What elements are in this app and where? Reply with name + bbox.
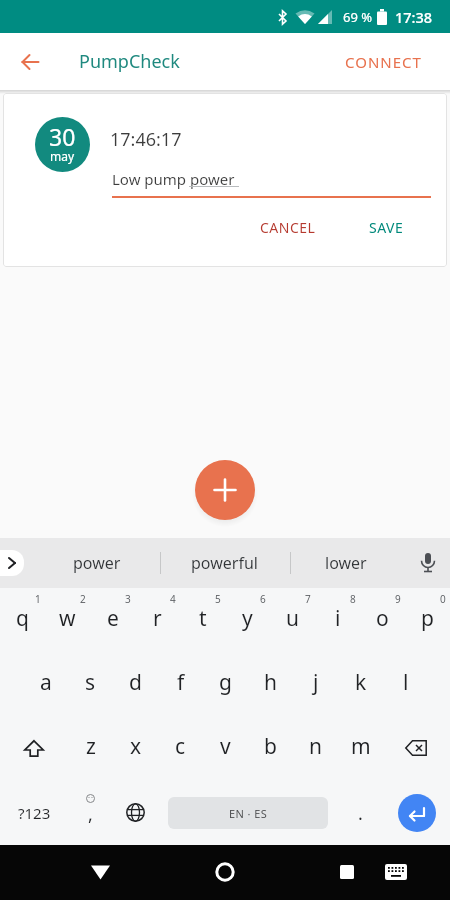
button[interactable]: [0, 716, 68, 780]
button[interactable]: EN · ES: [158, 780, 338, 845]
staticText: c: [175, 732, 186, 761]
button[interactable]: [82, 854, 118, 890]
staticText: 4: [170, 592, 176, 606]
staticText: n: [309, 732, 322, 761]
staticText: o: [376, 604, 389, 633]
button[interactable]: power: [57, 538, 137, 588]
button[interactable]: u: [270, 588, 315, 652]
button[interactable]: SAVE: [359, 208, 414, 247]
button[interactable]: [113, 780, 158, 845]
button[interactable]: c: [158, 716, 203, 780]
button[interactable]: g: [203, 652, 248, 716]
button[interactable]: l: [383, 652, 428, 716]
button[interactable]: m: [338, 716, 383, 780]
button[interactable]: ?123: [0, 780, 68, 845]
staticText: 6: [260, 592, 266, 606]
button[interactable]: [378, 854, 414, 890]
staticText: ?123: [18, 803, 51, 823]
button[interactable]: e: [90, 588, 135, 652]
staticText: CANCEL: [260, 218, 316, 237]
button[interactable]: p: [405, 588, 450, 652]
button[interactable]: powerful: [179, 538, 269, 588]
staticText: 0: [440, 592, 446, 606]
staticText: may: [50, 148, 75, 164]
staticText: powerful: [191, 552, 258, 574]
button[interactable]: [408, 543, 448, 583]
staticText: 3: [125, 592, 131, 606]
button[interactable]: t: [180, 588, 225, 652]
staticText: EN · ES: [229, 806, 268, 821]
button[interactable]: v: [203, 716, 248, 780]
staticText: s: [85, 668, 96, 697]
staticText: t: [199, 604, 207, 633]
staticText: q: [16, 604, 29, 633]
staticText: 2: [80, 592, 86, 606]
staticText: h: [264, 668, 277, 697]
button[interactable]: [195, 460, 255, 520]
button[interactable]: [329, 854, 365, 890]
button[interactable]: d: [113, 652, 158, 716]
staticText: SAVE: [369, 218, 404, 237]
button[interactable]: q: [0, 588, 45, 652]
staticText: d: [129, 668, 142, 697]
button[interactable]: i: [315, 588, 360, 652]
staticText: j: [313, 668, 319, 697]
staticText: 9: [395, 592, 401, 606]
staticText: l: [403, 668, 409, 697]
button[interactable]: [0, 550, 24, 576]
button[interactable]: a: [23, 652, 68, 716]
staticText: 69 %: [343, 8, 373, 26]
staticText: z: [86, 732, 96, 761]
staticText: lower: [325, 552, 367, 574]
button[interactable]: k: [338, 652, 383, 716]
staticText: p: [421, 604, 434, 633]
staticText: 8: [350, 592, 356, 606]
staticText: y: [242, 604, 253, 633]
staticText: m: [351, 732, 371, 761]
button[interactable]: b: [248, 716, 293, 780]
button[interactable]: [383, 716, 450, 780]
button[interactable]: f: [158, 652, 203, 716]
staticText: 30: [49, 121, 76, 152]
button[interactable]: w: [45, 588, 90, 652]
staticText: r: [153, 604, 162, 633]
button[interactable]: s: [68, 652, 113, 716]
staticText: power: [73, 552, 121, 574]
button[interactable]: j: [293, 652, 338, 716]
button[interactable]: CANCEL: [250, 208, 326, 247]
button[interactable]: r: [135, 588, 180, 652]
button[interactable]: h: [248, 652, 293, 716]
button[interactable]: lower: [306, 538, 386, 588]
button[interactable]: CONNECT: [335, 42, 432, 82]
button[interactable]: ,: [68, 780, 113, 845]
staticText: 17:46:17: [110, 127, 182, 152]
staticText: Low pump power: [112, 169, 235, 189]
button[interactable]: [383, 780, 450, 845]
staticText: 5: [215, 592, 221, 606]
staticText: v: [220, 732, 231, 761]
button[interactable]: n: [293, 716, 338, 780]
staticText: i: [335, 604, 341, 633]
staticText: 7: [305, 592, 311, 606]
staticText: PumpCheck: [79, 49, 180, 74]
staticText: u: [286, 604, 299, 633]
staticText: 1: [35, 592, 41, 606]
staticText: CONNECT: [345, 52, 422, 72]
button[interactable]: o: [360, 588, 405, 652]
staticText: k: [355, 668, 367, 697]
staticText: 17:38: [395, 7, 433, 27]
staticText: b: [264, 732, 277, 761]
button[interactable]: [207, 854, 243, 890]
staticText: x: [130, 732, 142, 761]
staticText: e: [107, 604, 119, 633]
button[interactable]: y: [225, 588, 270, 652]
staticText: g: [219, 668, 232, 697]
staticText: .: [358, 801, 363, 826]
staticText: f: [177, 668, 185, 697]
button[interactable]: z: [68, 716, 113, 780]
button[interactable]: x: [113, 716, 158, 780]
button[interactable]: .: [338, 780, 383, 845]
staticText: ,: [88, 802, 93, 827]
button[interactable]: [12, 44, 48, 80]
staticText: a: [40, 668, 52, 697]
